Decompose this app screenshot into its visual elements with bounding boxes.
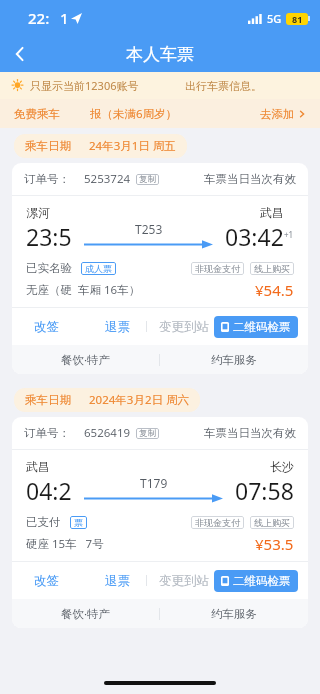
staticText: T179 xyxy=(140,475,168,491)
staticText: ¥53.5 xyxy=(255,534,294,554)
staticText: 线上购买 xyxy=(254,263,290,274)
staticText: 变更到站 xyxy=(159,319,209,335)
staticText: 餐饮·特产 xyxy=(61,352,111,368)
staticText: 出行车票信息。 xyxy=(185,79,262,93)
button[interactable]: 餐饮·特产 xyxy=(12,345,159,374)
button[interactable]: 餐饮·特产 xyxy=(12,599,159,628)
button[interactable]: 二维码检票 xyxy=(214,316,298,338)
button[interactable]: 订单号： xyxy=(12,417,308,628)
staticText: 变更到站 xyxy=(159,573,209,589)
staticText: 去添加 xyxy=(260,107,295,121)
staticText: 长沙 xyxy=(270,459,294,474)
staticText: 免费乘车 xyxy=(14,107,60,121)
button[interactable]: 变更到站 xyxy=(155,315,213,339)
staticText: 硬座 15车 7号 xyxy=(26,536,104,552)
staticText: +1 xyxy=(284,229,294,240)
staticText: 乘车日期 xyxy=(25,393,71,407)
staticText: 票 xyxy=(74,517,83,528)
button[interactable]: 变更到站 xyxy=(155,569,213,593)
staticText: 23:5 xyxy=(26,221,72,252)
staticText: 22: xyxy=(28,8,50,28)
button[interactable]: 复制 xyxy=(136,174,159,185)
staticText: 报（未满6周岁） xyxy=(90,106,178,122)
button[interactable]: 约车服务 xyxy=(160,599,308,628)
staticText: 改签 xyxy=(34,573,59,589)
staticText: 5G xyxy=(267,11,282,26)
button[interactable]: 退票 xyxy=(97,315,138,339)
staticText: 6526419 xyxy=(84,425,131,441)
staticText: 复制 xyxy=(139,428,156,439)
staticText: 81 xyxy=(292,13,303,25)
staticText: 非现金支付 xyxy=(195,263,240,274)
staticText: 漯河 xyxy=(26,205,50,220)
button[interactable]: 订单号： xyxy=(12,163,308,374)
button[interactable]: 免费乘车 xyxy=(0,99,320,128)
staticText: 武昌 xyxy=(26,459,50,474)
button[interactable]: 退票 xyxy=(97,569,138,593)
staticText: 07:58 xyxy=(235,475,294,506)
staticText: 5253724 xyxy=(84,171,131,187)
staticText: 非现金支付 xyxy=(195,517,240,528)
staticText: 本人车票 xyxy=(126,44,194,65)
staticText: 成人票 xyxy=(85,263,112,274)
staticText: 约车服务 xyxy=(211,607,257,621)
staticText: 退票 xyxy=(105,319,130,335)
staticText: 退票 xyxy=(105,573,130,589)
staticText: T253 xyxy=(135,221,163,237)
staticText: 已实名验 xyxy=(26,261,72,275)
staticText: 无座（硬 车厢 16车） xyxy=(26,282,141,298)
staticText: 武昌 xyxy=(260,205,284,220)
staticText: 已支付 xyxy=(26,515,61,529)
staticText: 2024年3月2日 周六 xyxy=(89,392,189,408)
button[interactable]: 约车服务 xyxy=(160,345,308,374)
button[interactable]: 改签 xyxy=(22,315,71,339)
staticText: ¥54.5 xyxy=(255,280,294,300)
staticText: 二维码检票 xyxy=(233,320,291,334)
staticText: 改签 xyxy=(34,319,59,335)
staticText: 线上购买 xyxy=(254,517,290,528)
button[interactable]: 改签 xyxy=(22,569,71,593)
button[interactable]: 返回 xyxy=(0,36,40,72)
staticText: 04:2 xyxy=(26,475,72,506)
staticText: 乘车日期 xyxy=(25,139,71,153)
staticText: 03:42 xyxy=(225,221,284,252)
staticText: 订单号： xyxy=(24,172,70,186)
staticText: 订单号： xyxy=(24,426,70,440)
button[interactable]: 复制 xyxy=(136,428,159,439)
staticText: 二维码检票 xyxy=(233,574,291,588)
staticText: 只显示当前12306账号 xyxy=(30,78,139,93)
staticText: 餐饮·特产 xyxy=(61,606,111,622)
button[interactable]: 二维码检票 xyxy=(214,570,298,592)
staticText: 24年3月1日 周五 xyxy=(89,138,176,154)
staticText: 约车服务 xyxy=(211,353,257,367)
staticText: 1 xyxy=(60,8,69,28)
staticText: 复制 xyxy=(139,174,156,185)
staticText: 车票当日当次有效 xyxy=(204,172,296,186)
staticText: 车票当日当次有效 xyxy=(204,426,296,440)
